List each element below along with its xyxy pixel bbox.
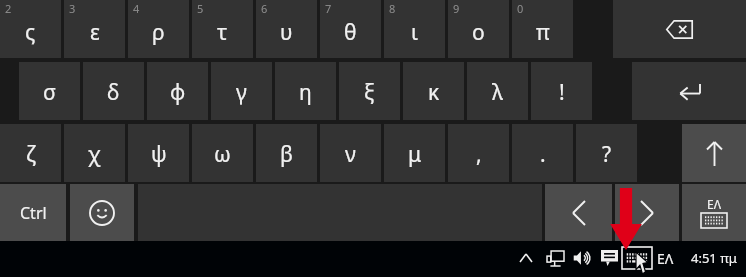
button[interactable]: Change layout bbox=[682, 184, 746, 242]
button[interactable]: . bbox=[512, 124, 573, 182]
staticText: π bbox=[536, 18, 550, 47]
button[interactable]: ω bbox=[192, 124, 253, 182]
staticText: 4:51 πμ bbox=[691, 249, 737, 267]
staticText: ΕΛ bbox=[657, 249, 674, 268]
staticText: β bbox=[280, 140, 293, 169]
staticText: ζ bbox=[26, 140, 36, 169]
button[interactable]: Backspace bbox=[613, 0, 746, 58]
button[interactable]: ! bbox=[531, 62, 592, 120]
button[interactable]: τ bbox=[192, 0, 253, 58]
button[interactable]: ν bbox=[320, 124, 381, 182]
button[interactable]: θ bbox=[320, 0, 381, 58]
staticText: ς bbox=[25, 18, 36, 47]
staticText: ! bbox=[559, 78, 565, 107]
button[interactable]: Chat bbox=[597, 246, 621, 270]
staticText: ξ bbox=[364, 78, 375, 107]
staticText: ο bbox=[472, 18, 485, 47]
button[interactable]: Shift bbox=[682, 124, 746, 182]
staticText: δ bbox=[107, 78, 120, 107]
staticText: μ bbox=[408, 140, 422, 169]
staticText: ? bbox=[602, 140, 612, 169]
button[interactable]: ξ bbox=[339, 62, 400, 120]
button[interactable]: δ bbox=[83, 62, 144, 120]
staticText: φ bbox=[170, 78, 186, 107]
staticText: ρ bbox=[152, 18, 165, 47]
staticText: η bbox=[299, 78, 312, 107]
staticText: , bbox=[476, 140, 482, 169]
staticText: ψ bbox=[151, 140, 167, 169]
staticText: ι bbox=[411, 18, 418, 47]
button[interactable]: σ bbox=[19, 62, 80, 120]
button[interactable]: Network bbox=[543, 246, 567, 270]
button[interactable]: ε bbox=[64, 0, 125, 58]
staticText: γ bbox=[236, 78, 247, 107]
button[interactable]: λ bbox=[467, 62, 528, 120]
button[interactable]: Language bbox=[652, 246, 678, 270]
button[interactable]: ρ bbox=[128, 0, 189, 58]
button[interactable]: η bbox=[275, 62, 336, 120]
button[interactable]: υ bbox=[256, 0, 317, 58]
button[interactable]: Volume bbox=[570, 246, 594, 270]
button[interactable]: π bbox=[512, 0, 573, 58]
button[interactable]: Previous bbox=[545, 184, 612, 242]
staticText: 3 bbox=[69, 1, 76, 16]
button[interactable]: ? bbox=[576, 124, 637, 182]
button[interactable]: Show hidden icons bbox=[516, 248, 536, 268]
staticText: . bbox=[540, 140, 546, 169]
staticText: 7 bbox=[325, 1, 332, 16]
staticText: χ bbox=[88, 140, 101, 169]
staticText: ω bbox=[214, 140, 231, 169]
staticText: ε bbox=[90, 18, 100, 47]
staticText: υ bbox=[280, 18, 293, 47]
button[interactable]: Touch keyboard bbox=[622, 247, 652, 269]
staticText: ν bbox=[345, 140, 356, 169]
staticText: τ bbox=[217, 18, 228, 47]
staticText: 0 bbox=[517, 1, 524, 16]
button[interactable]: ι bbox=[384, 0, 445, 58]
button[interactable]: 4:51 πμ bbox=[686, 246, 742, 270]
staticText: 4 bbox=[133, 1, 140, 16]
staticText: 5 bbox=[197, 1, 204, 16]
staticText: κ bbox=[428, 78, 440, 107]
staticText: σ bbox=[43, 78, 56, 107]
staticText: Ctrl bbox=[20, 202, 47, 224]
button[interactable]: , bbox=[448, 124, 509, 182]
button[interactable]: β bbox=[256, 124, 317, 182]
button[interactable]: Space bbox=[138, 184, 542, 242]
staticText: 6 bbox=[261, 1, 268, 16]
button[interactable]: χ bbox=[64, 124, 125, 182]
staticText: 2 bbox=[5, 1, 12, 16]
staticText: 9 bbox=[453, 1, 460, 16]
button[interactable]: Enter bbox=[632, 62, 746, 120]
button[interactable]: Emoji bbox=[70, 184, 134, 242]
staticText: θ bbox=[344, 18, 357, 47]
staticText: λ bbox=[492, 78, 503, 107]
button[interactable]: ς bbox=[0, 0, 61, 58]
button[interactable]: ψ bbox=[128, 124, 189, 182]
staticText: ΕΛ bbox=[707, 196, 721, 212]
button[interactable]: Next bbox=[615, 184, 679, 242]
button[interactable]: ζ bbox=[0, 124, 61, 182]
button[interactable]: κ bbox=[403, 62, 464, 120]
button[interactable]: γ bbox=[211, 62, 272, 120]
button[interactable]: ο bbox=[448, 0, 509, 58]
button[interactable]: μ bbox=[384, 124, 445, 182]
staticText: 8 bbox=[389, 1, 396, 16]
button[interactable]: Ctrl bbox=[0, 184, 66, 242]
button[interactable]: φ bbox=[147, 62, 208, 120]
